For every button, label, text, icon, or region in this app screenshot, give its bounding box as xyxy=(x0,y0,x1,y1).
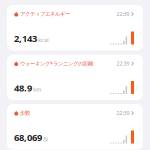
staticText: 22:39 xyxy=(117,109,130,117)
staticText: 22:39 xyxy=(117,60,130,67)
button[interactable]: 歩数 xyxy=(7,104,143,149)
staticText: 48.9 xyxy=(14,82,32,94)
staticText: 68,069 xyxy=(14,131,42,143)
staticText: kcal xyxy=(38,36,48,43)
button[interactable]: ウォーキング+ランニングの距離 xyxy=(7,54,143,100)
staticText: ウォーキング+ランニングの距離 xyxy=(20,60,93,67)
staticText: 歩数 xyxy=(20,110,30,116)
staticText: 2,143 xyxy=(14,32,37,44)
staticText: アクティブエネルギー xyxy=(20,11,70,17)
staticText: 22:39 xyxy=(117,10,130,18)
staticText: km xyxy=(33,86,41,93)
staticText: 歩 xyxy=(43,136,48,142)
button[interactable]: アクティブエネルギー xyxy=(7,5,143,50)
